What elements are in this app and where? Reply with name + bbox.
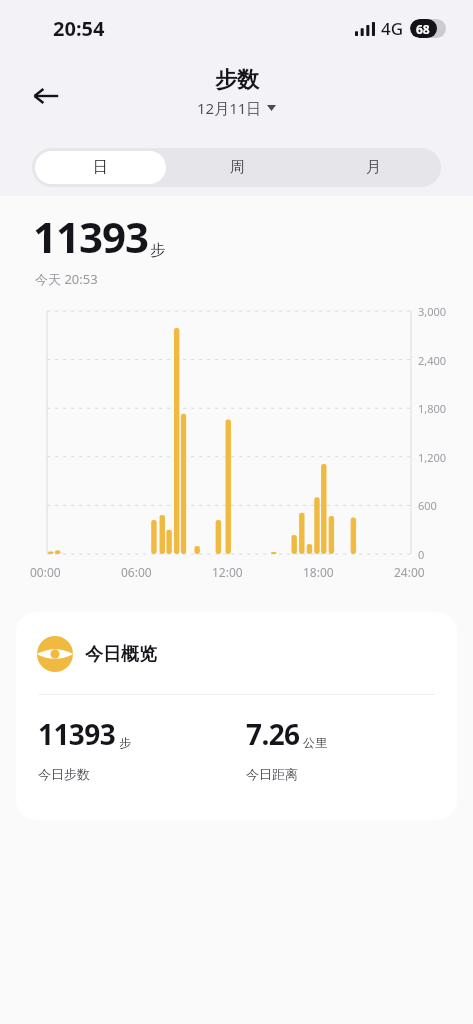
staticText: 今日概览 bbox=[85, 643, 157, 666]
staticText: 11393 bbox=[33, 208, 149, 265]
staticText: 4G bbox=[381, 17, 404, 40]
button[interactable]: Overview bbox=[16, 612, 457, 820]
staticText: 今日距离 bbox=[246, 766, 298, 782]
staticText: 今天 20:53 bbox=[35, 270, 98, 288]
staticText: 1,800 bbox=[418, 401, 447, 416]
staticText: 2,400 bbox=[418, 353, 447, 368]
other: Overview bbox=[37, 636, 73, 672]
staticText: 11393 bbox=[38, 715, 116, 753]
staticText: 今日步数 bbox=[38, 766, 90, 782]
button[interactable]: 日 bbox=[35, 151, 166, 184]
staticText: 周 bbox=[230, 158, 245, 177]
button[interactable]: 周 bbox=[172, 151, 302, 184]
staticText: 12:00 bbox=[212, 564, 243, 580]
staticText: 600 bbox=[418, 498, 437, 513]
staticText: 24:00 bbox=[394, 564, 425, 580]
staticText: 00:00 bbox=[30, 564, 61, 580]
staticText: 12月11日 bbox=[197, 98, 262, 118]
staticText: 20:54 bbox=[53, 15, 105, 42]
button[interactable]: 12月11日 bbox=[197, 98, 276, 118]
staticText: 0 bbox=[418, 547, 425, 562]
staticText: 06:00 bbox=[121, 564, 152, 580]
staticText: 公里 bbox=[303, 735, 327, 750]
button[interactable]: 月 bbox=[308, 151, 438, 184]
staticText: 步 bbox=[119, 735, 131, 750]
staticText: 68 bbox=[416, 21, 430, 37]
staticText: 月 bbox=[366, 158, 381, 177]
staticText: 日 bbox=[93, 158, 108, 177]
staticText: 1,200 bbox=[418, 450, 447, 465]
staticText: 步 bbox=[150, 241, 165, 260]
button[interactable]: Back bbox=[22, 72, 70, 120]
staticText: 7.26 bbox=[246, 715, 300, 753]
staticText: 18:00 bbox=[303, 564, 334, 580]
staticText: 步数 bbox=[215, 66, 259, 94]
staticText: 3,000 bbox=[418, 304, 447, 319]
